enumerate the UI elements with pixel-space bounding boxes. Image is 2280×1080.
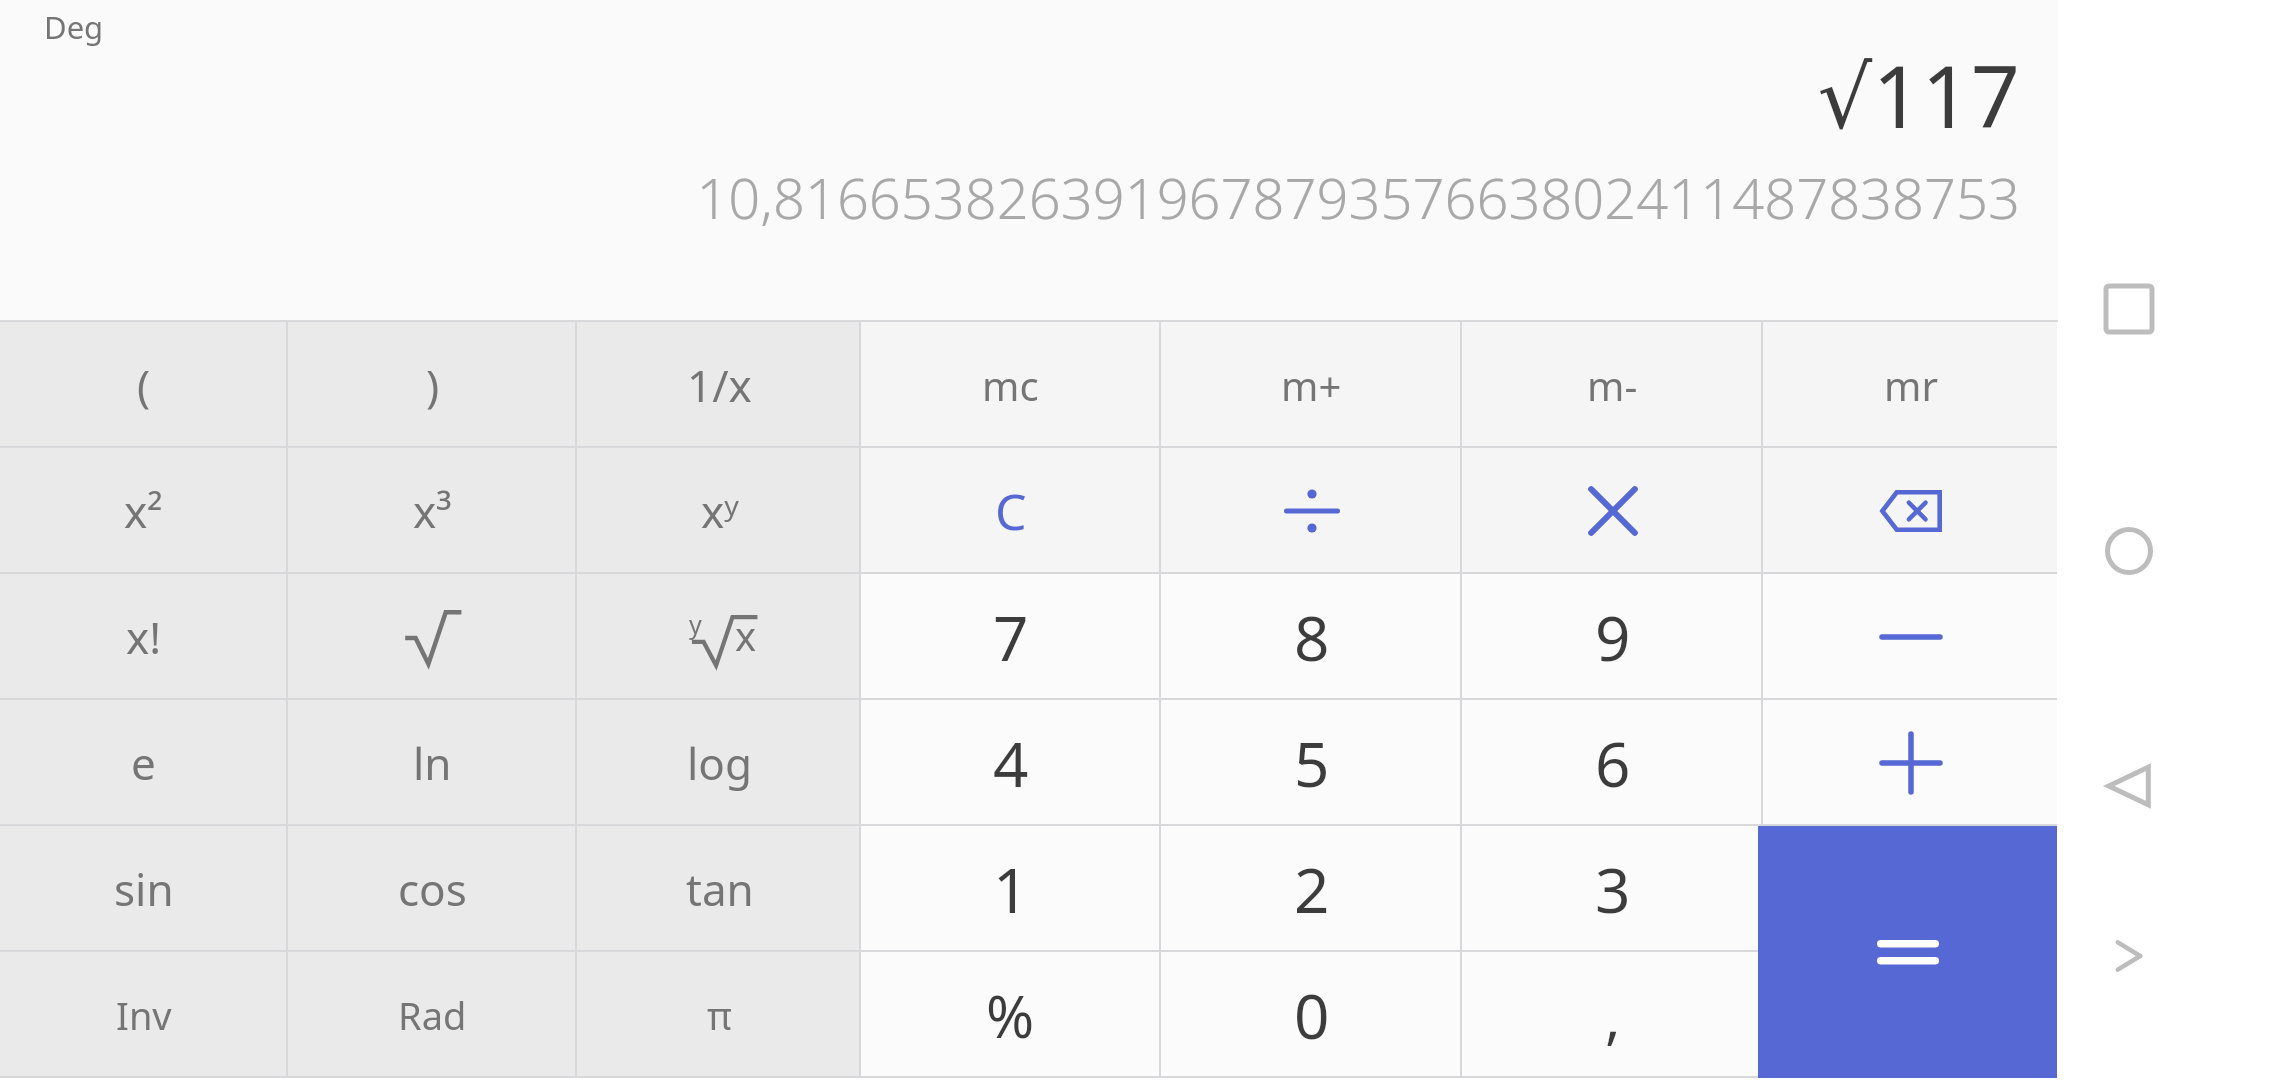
button[interactable]: x! [0, 574, 287, 700]
staticText: 10,8166538263919678793576638024114878387… [696, 159, 2020, 235]
button[interactable]: Divide [1162, 448, 1461, 574]
staticText: sin [114, 859, 174, 919]
staticText: , [1605, 976, 1621, 1055]
button[interactable]: Equals [1758, 826, 2057, 1078]
staticText: π [707, 989, 732, 1041]
button[interactable]: e [0, 700, 287, 826]
staticText: √117 [1817, 36, 2020, 153]
button[interactable] [289, 574, 576, 700]
staticText: 2 [1294, 847, 1330, 931]
staticText: % [986, 976, 1035, 1055]
staticText: 5 [1294, 721, 1330, 805]
button[interactable]: ln [289, 700, 576, 826]
staticText: 4 [993, 721, 1029, 805]
button[interactable]: 4 [861, 700, 1160, 826]
staticText: 9 [1595, 595, 1631, 679]
button[interactable]: 2 [1162, 826, 1461, 952]
staticText: e [131, 733, 156, 793]
button[interactable]: 8 [1162, 574, 1461, 700]
button[interactable]: xʸ [578, 448, 861, 574]
button[interactable]: 5 [1162, 700, 1461, 826]
staticText: x² [124, 481, 163, 541]
staticText: mr [1884, 358, 1938, 412]
button[interactable]: Inv [0, 952, 287, 1078]
button[interactable]: % [861, 952, 1160, 1078]
staticText: 8 [1294, 595, 1330, 679]
staticText: x³ [413, 481, 452, 541]
button[interactable]: Back [2103, 760, 2155, 812]
button[interactable]: 3 [1463, 826, 1762, 952]
staticText: ( [137, 355, 151, 415]
staticText: m+ [1281, 358, 1342, 412]
button[interactable]: 7 [861, 574, 1160, 700]
staticText: ln [413, 733, 452, 793]
staticText: C [995, 477, 1027, 545]
button[interactable]: ) [289, 322, 576, 448]
button[interactable]: tan [578, 826, 861, 952]
button[interactable]: x² [0, 448, 287, 574]
staticText: cos [398, 859, 467, 919]
staticText: x! [126, 607, 162, 667]
staticText: 1/x [687, 355, 752, 415]
button[interactable]: 9 [1463, 574, 1762, 700]
button[interactable]: log [578, 700, 861, 826]
staticText: 6 [1595, 721, 1631, 805]
staticText: m- [1587, 358, 1638, 412]
button[interactable]: , [1463, 952, 1762, 1078]
button[interactable]: x³ [289, 448, 576, 574]
button[interactable]: π [578, 952, 861, 1078]
staticText: Inv [116, 989, 172, 1041]
button[interactable]: 1 [861, 826, 1160, 952]
staticText: 3 [1595, 847, 1631, 931]
button[interactable]: cos [289, 826, 576, 952]
button[interactable]: mc [861, 322, 1160, 448]
button[interactable]: sin [0, 826, 287, 952]
button[interactable]: Backspace [1764, 448, 2057, 574]
button[interactable]: Minus [1764, 574, 2057, 700]
staticText: y [689, 607, 702, 641]
staticText: 0 [1294, 973, 1330, 1057]
button[interactable]: Plus [1764, 700, 2057, 826]
button[interactable]: mr [1764, 322, 2057, 448]
button[interactable]: 1/x [578, 322, 861, 448]
button[interactable]: m+ [1162, 322, 1461, 448]
button[interactable]: 0 [1162, 952, 1461, 1078]
staticText: xʸ [701, 481, 739, 541]
button[interactable]: Expand [2103, 930, 2155, 982]
staticText: ) [426, 355, 440, 415]
staticText: x [735, 608, 757, 662]
staticText: log [687, 733, 753, 793]
staticText: 7 [993, 595, 1029, 679]
button[interactable]: m- [1463, 322, 1762, 448]
staticText: 1 [993, 847, 1029, 931]
staticText: Rad [398, 989, 467, 1041]
staticText: tan [686, 859, 754, 919]
button[interactable]: C [861, 448, 1160, 574]
button[interactable]: Home [2103, 525, 2155, 577]
button[interactable]: Multiply [1463, 448, 1762, 574]
button[interactable]: Rad [289, 952, 576, 1078]
staticText: Deg [44, 6, 104, 48]
staticText: mc [982, 358, 1039, 412]
button[interactable]: 6 [1463, 700, 1762, 826]
button[interactable]: ( [0, 322, 287, 448]
button[interactable]: Recent apps [2103, 283, 2155, 335]
button[interactable]: y [578, 574, 861, 700]
